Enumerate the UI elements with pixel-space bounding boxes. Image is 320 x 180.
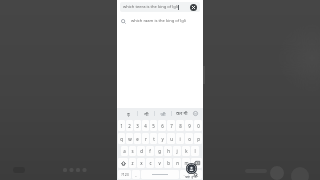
staticText: l [194,148,196,154]
staticText: 1 [120,123,123,129]
staticText: 9 [188,123,191,129]
button[interactable]: s [129,146,136,156]
button[interactable]: c [146,158,154,168]
button[interactable]: q [118,133,125,144]
staticText: q [120,136,123,142]
staticText: g [158,148,161,154]
button[interactable]: 4 [142,120,149,131]
button[interactable]: गी [138,108,154,119]
staticText: s [131,148,134,154]
button[interactable]: Comma [132,170,140,179]
staticText: 8 [179,123,182,129]
button[interactable]: which raam is the king of lgli [117,14,203,28]
button[interactable]: e [134,133,141,144]
button[interactable]: 1 [118,120,125,131]
button[interactable]: u [167,133,175,144]
staticText: u [170,136,173,142]
staticText: इ [127,110,130,117]
staticText: 5 [152,123,155,129]
button[interactable]: Search [189,170,202,179]
button[interactable]: 5 [150,120,157,131]
button[interactable]: b [164,158,172,168]
button[interactable]: जी [155,108,171,119]
button[interactable]: h [164,146,172,156]
staticText: x [140,160,143,166]
staticText: कर गी [176,110,188,117]
staticText: b [167,160,170,166]
button[interactable]: Shift [118,158,128,168]
staticText: d [140,148,143,154]
button[interactable]: d [137,146,145,156]
staticText: k [185,148,188,154]
staticText: h [167,148,170,154]
button[interactable]: i [176,133,184,144]
staticText: t [153,136,155,142]
button[interactable]: y [158,133,166,144]
button[interactable]: 3 [134,120,141,131]
staticText: c [149,160,152,166]
button[interactable]: Space [141,170,179,179]
staticText: o [188,136,191,142]
staticText: e [136,136,139,142]
button[interactable]: n [173,158,181,168]
staticText: जी [160,110,166,117]
button[interactable]: 0 [194,120,202,131]
button[interactable]: 7 [167,120,175,131]
button[interactable]: j [173,146,181,156]
staticText: r [145,136,147,142]
staticText: m [184,160,189,166]
button[interactable]: x [137,158,145,168]
staticText: y [161,136,164,142]
button[interactable]: r [142,133,149,144]
staticText: खबर दुनिया [185,175,197,179]
button[interactable]: p [194,133,202,144]
staticText: . [183,172,185,178]
staticText: which raam is the king of lgli [131,18,186,24]
button[interactable]: which teera is the king of lgli [120,2,200,12]
button[interactable]: Backspace [191,158,202,168]
button[interactable]: More suggestions [191,108,200,119]
button[interactable]: 6 [158,120,166,131]
button[interactable]: g [155,146,163,156]
staticText: v [158,160,161,166]
button[interactable]: v [155,158,163,168]
button[interactable]: l [191,146,199,156]
button[interactable]: 2 [126,120,133,131]
button[interactable]: k [182,146,190,156]
staticText: w [128,136,132,142]
button[interactable]: 9 [185,120,193,131]
staticText: 0 [197,123,200,129]
button[interactable]: कर गी [172,108,191,119]
staticText: a [123,148,126,154]
staticText: n [176,160,179,166]
button[interactable]: इ [120,108,137,119]
button[interactable]: f [146,146,154,156]
staticText: गी [144,110,149,117]
button[interactable]: Symbols [118,170,131,179]
staticText: which teera is the king of lgli [123,4,178,10]
button[interactable]: z [129,158,136,168]
staticText: i [179,136,181,142]
staticText: f [149,148,151,154]
staticText: 2 [128,123,131,129]
staticText: 4 [144,123,147,129]
button[interactable]: Period [180,170,188,179]
button[interactable]: m [182,158,190,168]
staticText: z [131,160,134,166]
button[interactable]: 8 [176,120,184,131]
staticText: p [197,136,200,142]
button[interactable]: a [121,146,128,156]
staticText: 7 [170,123,173,129]
button[interactable]: o [185,133,193,144]
staticText: ?123 [121,172,129,177]
button[interactable]: w [126,133,133,144]
staticText: j [176,148,178,154]
button[interactable]: t [150,133,157,144]
staticText: 3 [136,123,139,129]
button[interactable]: Clear search [189,3,198,12]
staticText: 6 [161,123,164,129]
staticText: , [135,172,137,178]
